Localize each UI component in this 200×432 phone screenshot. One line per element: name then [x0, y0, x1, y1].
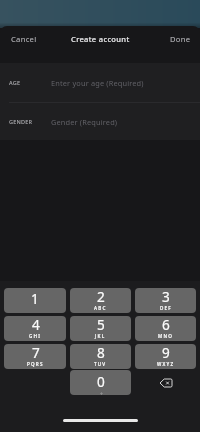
staticText: 1: [31, 289, 39, 308]
button[interactable]: 5: [70, 316, 131, 341]
staticText: 8: [97, 344, 105, 362]
staticText: +: [100, 391, 103, 395]
staticText: Create account: [71, 34, 130, 44]
button[interactable]: 3: [135, 288, 196, 313]
staticText: 5: [97, 316, 105, 334]
button[interactable]: Backspace: [135, 370, 196, 395]
staticText: 2: [97, 288, 105, 306]
staticText: WXYZ: [157, 361, 175, 367]
staticText: GENDER: [9, 118, 33, 125]
staticText: 9: [162, 344, 170, 362]
button[interactable]: 7: [4, 344, 66, 369]
staticText: AGE: [9, 79, 21, 86]
button[interactable]: Create account: [65, 28, 136, 50]
staticText: DEF: [160, 305, 172, 311]
staticText: Done: [170, 34, 191, 44]
button[interactable]: GENDER: [0, 103, 200, 140]
staticText: PQRS: [27, 361, 44, 367]
button[interactable]: AGE: [0, 63, 200, 102]
staticText: JKL: [95, 333, 106, 339]
button[interactable]: 9: [135, 344, 196, 369]
button[interactable]: 2: [70, 288, 131, 313]
staticText: 7: [32, 344, 40, 362]
button[interactable]: 6: [135, 316, 196, 341]
staticText: Cancel: [11, 34, 37, 44]
button[interactable]: 4: [4, 316, 66, 341]
staticText: 4: [32, 316, 40, 334]
staticText: MNO: [158, 333, 173, 339]
button[interactable]: Done: [164, 28, 197, 50]
staticText: 6: [162, 316, 170, 334]
staticText: GHI: [29, 333, 42, 339]
staticText: 3: [162, 288, 170, 306]
staticText: 0: [97, 372, 105, 391]
button[interactable]: 1: [4, 288, 66, 313]
staticText: Gender (Required): [51, 117, 118, 127]
button[interactable]: Cancel: [5, 28, 43, 50]
button[interactable]: 0: [70, 370, 131, 395]
button[interactable]: 8: [70, 344, 131, 369]
staticText: Enter your age (Required): [51, 78, 144, 88]
staticText: TUV: [94, 361, 107, 367]
staticText: ABC: [94, 305, 107, 311]
